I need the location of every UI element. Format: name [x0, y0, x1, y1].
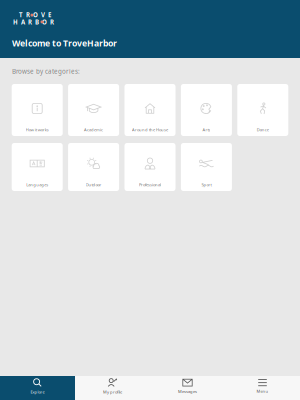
staticText: Menu — [256, 388, 268, 394]
button[interactable]: How it works — [12, 84, 63, 136]
button[interactable]: Messages — [150, 376, 225, 400]
button[interactable]: Professional — [124, 143, 175, 191]
staticText: Professional — [139, 182, 161, 187]
staticText: Arts — [202, 127, 210, 132]
staticText: Sport — [201, 182, 211, 187]
staticText: Dance — [257, 127, 269, 132]
button[interactable]: Outdoor — [68, 143, 119, 191]
button[interactable]: Dance — [237, 84, 288, 136]
staticText: My profile — [103, 389, 122, 395]
button[interactable]: Languages — [12, 143, 63, 191]
button[interactable]: My profile — [75, 376, 150, 400]
staticText: Around the House — [132, 127, 168, 132]
staticText: Academic — [84, 127, 103, 132]
staticText: T R O V E — [19, 11, 51, 19]
button[interactable]: Sport — [181, 143, 232, 191]
button[interactable]: Academic — [68, 84, 119, 136]
staticText: Languages — [26, 182, 48, 187]
button[interactable]: Around the House — [124, 84, 175, 136]
staticText: Outdoor — [86, 182, 102, 187]
button[interactable]: Arts — [181, 84, 232, 136]
staticText: Browse by categories: — [12, 67, 80, 75]
staticText: Explore — [30, 389, 44, 394]
staticText: Messages — [178, 389, 197, 394]
staticText: H A R B O R — [13, 18, 54, 26]
staticText: Welcome to TroveHarbor — [12, 37, 117, 49]
staticText: How it works — [26, 127, 49, 132]
button[interactable]: Menu — [225, 376, 300, 400]
button[interactable]: Explore — [0, 376, 75, 400]
